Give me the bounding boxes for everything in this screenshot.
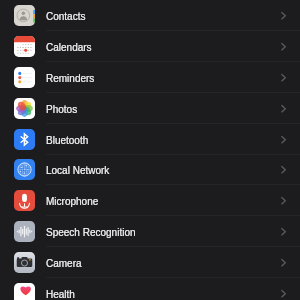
staticText: Microphone — [46, 196, 99, 207]
button[interactable]: Contacts — [0, 0, 300, 31]
button[interactable]: Calendars — [0, 31, 300, 62]
staticText: Local Network — [46, 165, 110, 176]
button[interactable]: Microphone — [0, 185, 300, 216]
button[interactable]: Camera — [0, 247, 300, 278]
staticText: Reminders — [46, 73, 95, 84]
staticText: Calendars — [46, 42, 92, 53]
button[interactable]: Local Network — [0, 154, 300, 185]
staticText: Speech Recognition — [46, 227, 136, 238]
button[interactable]: Photos — [0, 93, 300, 124]
staticText: Photos — [46, 104, 78, 115]
button[interactable]: Health — [0, 278, 300, 300]
button[interactable]: Bluetooth — [0, 124, 300, 155]
staticText: Contacts — [46, 11, 86, 22]
staticText: Health — [46, 289, 75, 300]
staticText: Camera — [46, 258, 82, 269]
button[interactable]: Reminders — [0, 62, 300, 93]
staticText: Bluetooth — [46, 135, 89, 146]
button[interactable]: Speech Recognition — [0, 216, 300, 247]
